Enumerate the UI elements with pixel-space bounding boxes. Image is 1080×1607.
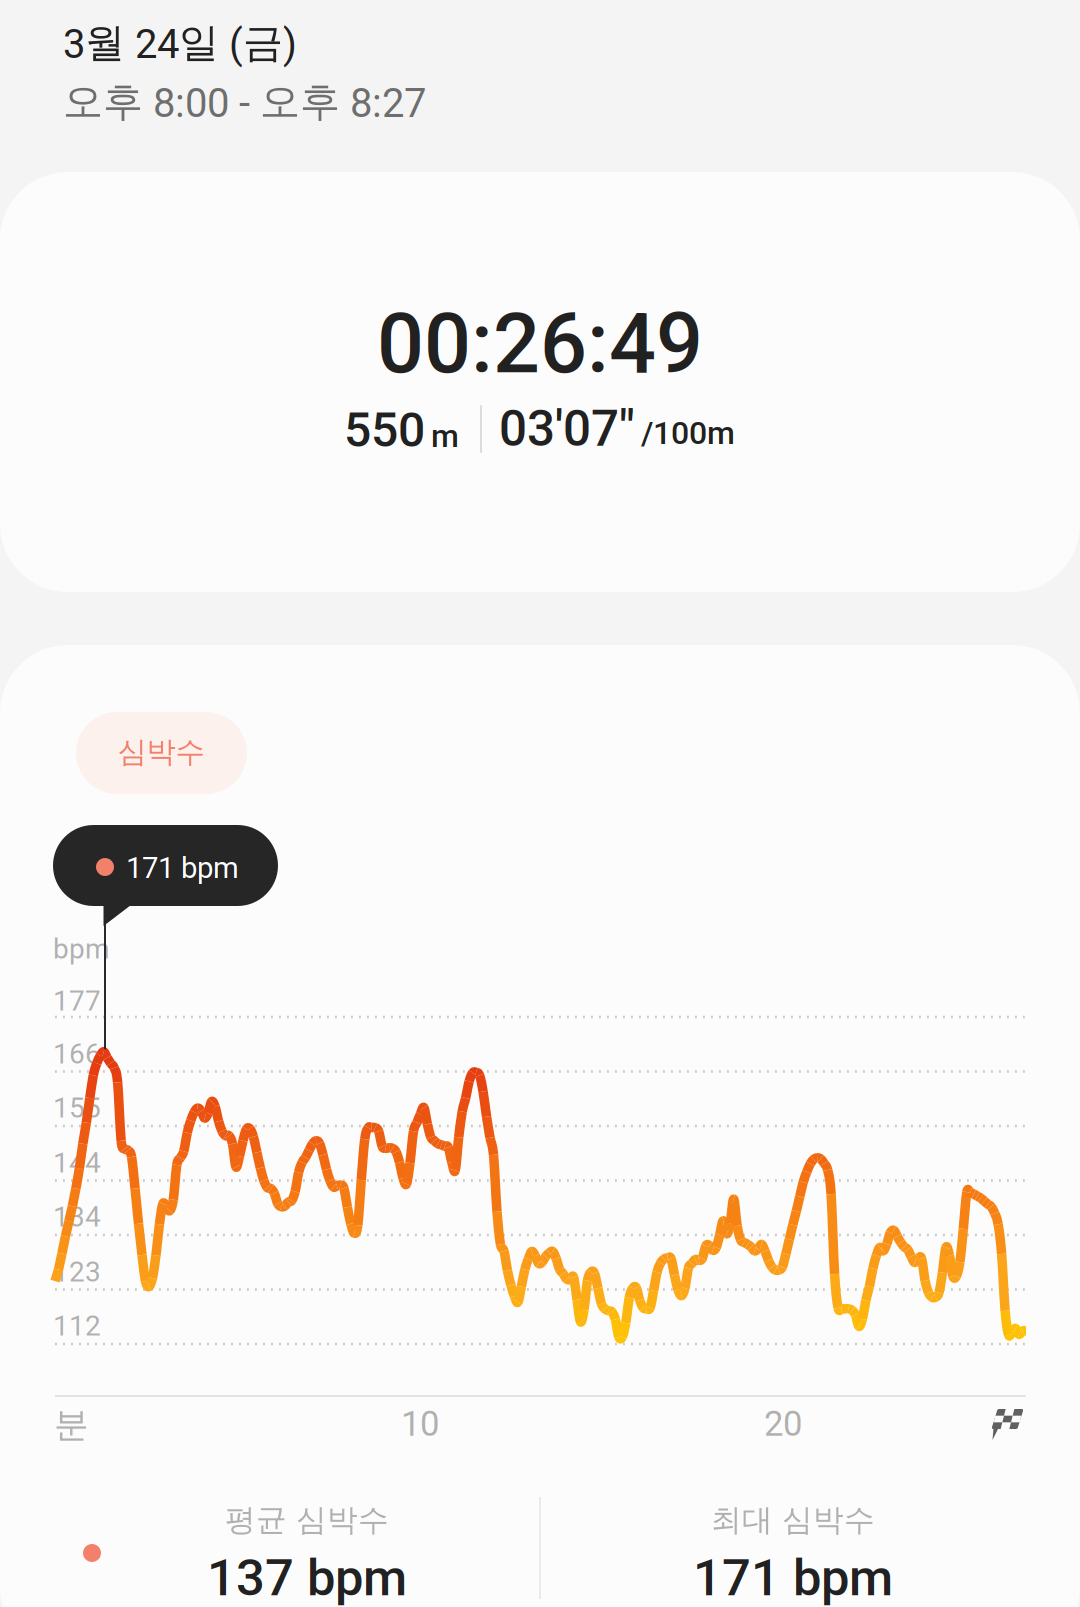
staticText: 112 — [53, 1310, 101, 1342]
staticText: m — [431, 417, 459, 455]
staticText: 평균 심박수 — [225, 1501, 389, 1539]
staticText: 20 — [764, 1404, 802, 1444]
staticText: 144 — [53, 1147, 101, 1179]
staticText: 123 — [53, 1256, 101, 1288]
staticText: 분 — [54, 1403, 89, 1447]
staticText: 137 bpm — [207, 1548, 407, 1607]
staticText: bpm — [53, 933, 110, 965]
staticText: /100m — [641, 414, 735, 452]
staticText: 134 — [53, 1201, 101, 1233]
staticText: 155 — [53, 1092, 101, 1124]
staticText: 3월 24일 (금) — [63, 18, 297, 68]
staticText: 550 — [344, 402, 425, 458]
staticText: 171 bpm — [126, 851, 239, 885]
staticText: 최대 심박수 — [711, 1501, 875, 1539]
staticText: 10 — [401, 1404, 439, 1444]
staticText: 오후 8:00 - 오후 8:27 — [63, 77, 426, 127]
staticText: 03'07" — [499, 400, 635, 458]
staticText: 심박수 — [117, 733, 204, 770]
staticText: 171 bpm — [693, 1548, 893, 1607]
staticText: 166 — [53, 1038, 101, 1070]
staticText: 00:26:49 — [377, 296, 703, 392]
staticText: 177 — [53, 985, 101, 1017]
